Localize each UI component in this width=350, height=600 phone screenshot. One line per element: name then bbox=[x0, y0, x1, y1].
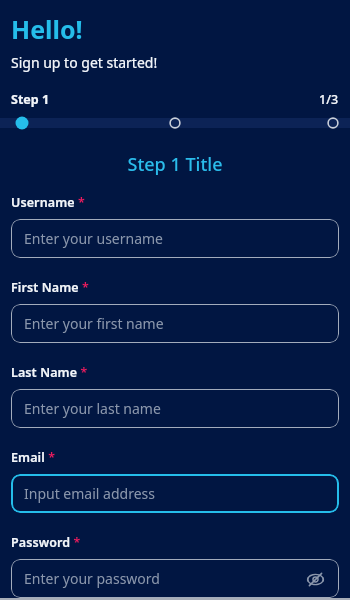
staticText: Enter your last name bbox=[24, 399, 326, 418]
button[interactable]: Enter your password bbox=[11, 559, 339, 598]
staticText: Enter your password bbox=[24, 569, 304, 588]
staticText: Password * bbox=[11, 534, 81, 551]
staticText: Input email address bbox=[24, 484, 326, 503]
button[interactable]: Enter your username bbox=[11, 219, 339, 258]
staticText: Hello! bbox=[11, 12, 83, 46]
staticText: Username * bbox=[11, 194, 85, 211]
button[interactable]: Enter your last name bbox=[11, 389, 339, 428]
staticText: Sign up to get started! bbox=[11, 53, 158, 72]
staticText: Last Name * bbox=[11, 364, 88, 381]
staticText: Step 1 Title bbox=[0, 152, 350, 177]
button[interactable]: Show password bbox=[304, 568, 326, 590]
staticText: Step 1 bbox=[11, 91, 50, 108]
button[interactable]: Input email address bbox=[11, 474, 339, 513]
staticText: Enter your first name bbox=[24, 314, 326, 333]
button[interactable]: Enter your first name bbox=[11, 304, 339, 343]
staticText: 1/3 bbox=[319, 91, 339, 108]
staticText: Email * bbox=[11, 449, 56, 466]
staticText: First Name * bbox=[11, 279, 89, 296]
staticText: Enter your username bbox=[24, 229, 326, 248]
